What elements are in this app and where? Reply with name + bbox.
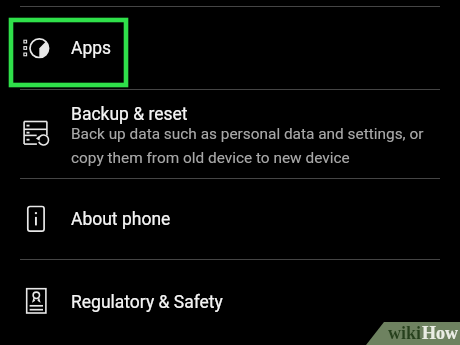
staticText: wiki: [388, 323, 422, 343]
staticText: About phone: [71, 209, 171, 230]
staticText: Regulatory & Safety: [71, 292, 223, 313]
button[interactable]: Regulatory and Safety icon: [0, 260, 460, 345]
button[interactable]: About phone icon: [0, 179, 460, 259]
button[interactable]: Backup and reset icon: [0, 90, 460, 178]
staticText: Backup & reset: [71, 104, 188, 125]
other: Apps icon: [0, 7, 460, 89]
other: About phone icon: [0, 179, 460, 259]
staticText: Back up data such as personal data and s…: [71, 125, 431, 166]
other: Regulatory and Safety icon: [0, 260, 460, 345]
button[interactable]: Apps icon: [0, 7, 460, 89]
staticText: How: [422, 323, 458, 343]
other: Backup and reset icon: [0, 90, 460, 178]
staticText: Apps: [71, 38, 112, 59]
